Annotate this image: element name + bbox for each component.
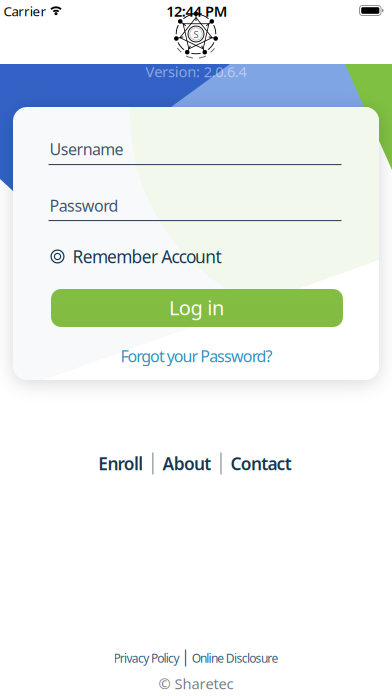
staticText: Enroll (98, 452, 143, 475)
staticText: Online Disclosure (192, 650, 278, 666)
staticText: © Sharetec (158, 674, 233, 693)
staticText: Privacy Policy (113, 650, 179, 666)
staticText: Forgot your Password? (120, 345, 272, 367)
staticText: Password (49, 195, 119, 216)
staticText: About (162, 452, 211, 475)
staticText: Username (49, 138, 124, 160)
staticText: Carrier (4, 2, 46, 20)
staticText: S (193, 28, 198, 41)
staticText: Remember Account (72, 245, 221, 268)
staticText: 12:44 PM (166, 1, 228, 21)
staticText: Version: 2.0.6.4 (145, 62, 246, 81)
staticText: Log in (169, 294, 224, 321)
staticText: Contact (231, 452, 292, 475)
